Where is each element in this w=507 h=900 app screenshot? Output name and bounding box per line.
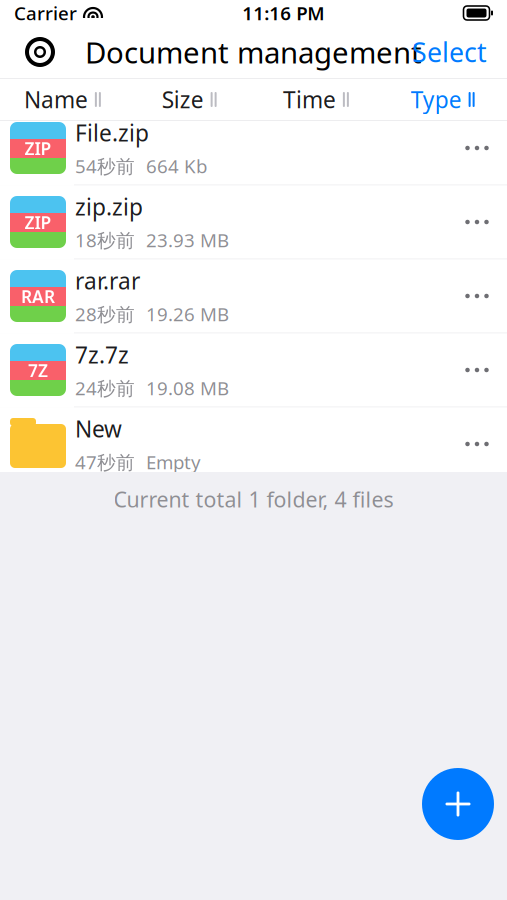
staticText: Time (283, 84, 336, 114)
staticText: 47秒前 (75, 450, 135, 474)
staticText: ZIP (24, 211, 51, 234)
staticText: Size (162, 84, 204, 114)
button[interactable]: 7Z (0, 333, 507, 407)
staticText: New (75, 414, 122, 444)
staticText: Empty (146, 450, 201, 474)
button[interactable]: RAR (0, 259, 507, 333)
staticText: 11:16 PM (242, 1, 324, 25)
staticText: Type (411, 84, 462, 114)
staticText: 24秒前 (75, 376, 135, 400)
staticText: RAR (21, 285, 55, 308)
staticText: 54秒前 (75, 154, 135, 178)
staticText: 28秒前 (75, 302, 135, 326)
staticText: 18秒前 (75, 228, 135, 252)
staticText: Carrier (14, 1, 77, 25)
staticText: 7Z (28, 359, 48, 382)
staticText: zip.zip (75, 192, 143, 222)
button[interactable]: Type (380, 79, 507, 120)
staticText: File.zip (75, 118, 149, 148)
staticText: Document management (85, 32, 422, 71)
button[interactable]: Add (422, 768, 494, 840)
button[interactable]: More options (447, 263, 507, 329)
staticText: Select (412, 34, 487, 70)
staticText: 664 Kb (146, 154, 207, 178)
button[interactable]: ZIP (0, 111, 507, 185)
staticText: 19.08 MB (146, 376, 229, 400)
button[interactable]: Settings (16, 28, 64, 76)
staticText: 23.93 MB (146, 228, 229, 252)
button[interactable]: Name (0, 79, 127, 120)
staticText: 7z.7z (75, 340, 129, 370)
button[interactable]: New (0, 407, 507, 481)
button[interactable]: Time (253, 79, 380, 120)
staticText: Name (24, 84, 88, 114)
staticText: ZIP (24, 137, 51, 160)
staticText: 19.26 MB (146, 302, 229, 326)
staticText: Current total 1 folder, 4 files (113, 485, 393, 513)
button[interactable]: More options (447, 411, 507, 477)
button[interactable]: Select (408, 28, 491, 76)
button[interactable]: ZIP (0, 185, 507, 259)
staticText: rar.rar (75, 266, 140, 296)
button[interactable]: More options (447, 337, 507, 403)
button[interactable]: Size (127, 79, 254, 120)
button[interactable]: More options (447, 115, 507, 181)
button[interactable]: More options (447, 189, 507, 255)
